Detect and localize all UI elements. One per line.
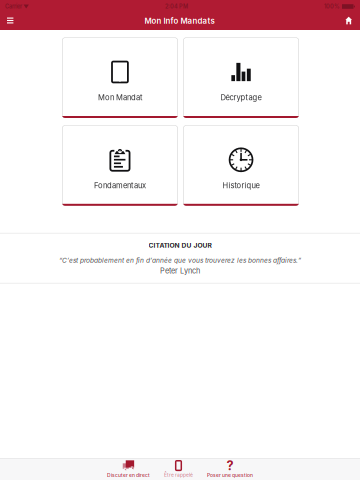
button[interactable]: Fondamentaux [62,125,178,206]
staticText: Poser une question [207,472,253,478]
button[interactable]: ? [200,458,260,480]
staticText: CITATION DU JOUR [148,241,211,249]
staticText: Décryptage [221,93,262,102]
staticText: Être rappelé [164,472,193,478]
button[interactable]: Discuter en direct [100,458,157,480]
staticText: Discuter en direct [107,472,150,478]
staticText: 100% [324,3,340,10]
staticText: Peter Lynch [160,266,200,275]
button[interactable]: Home [334,13,360,30]
staticText: ? [226,458,233,473]
staticText: Carrier [5,3,22,10]
staticText: Mon Info Mandats [144,16,214,26]
staticText: “C’est probablement en fin d’année que v… [59,256,301,264]
staticText: Mon Mandat [98,93,142,102]
staticText: Fondamentaux [94,181,146,190]
button[interactable]: Décryptage [183,37,299,118]
button[interactable]: Menu [0,13,24,30]
button[interactable]: Être rappelé [157,458,200,480]
button[interactable]: Historique [183,125,299,206]
staticText: 2:04 PM [165,3,188,10]
button[interactable]: Mon Mandat [62,37,178,118]
staticText: Historique [223,181,260,190]
